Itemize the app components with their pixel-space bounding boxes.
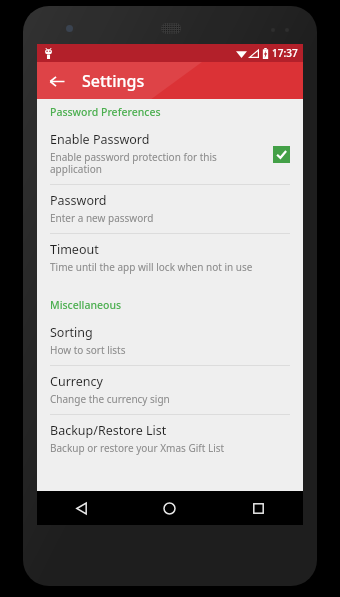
staticText: Enable Password <box>50 131 150 148</box>
staticText: Backup or restore your Xmas Gift List <box>50 441 225 455</box>
staticText: How to sort lists <box>50 343 126 357</box>
staticText: Password Preferences <box>50 105 161 119</box>
button[interactable]: Recent apps <box>214 491 303 525</box>
button[interactable]: Backup/Restore List <box>37 415 303 463</box>
staticText: Backup/Restore List <box>50 422 167 439</box>
button[interactable]: Currency <box>37 366 303 414</box>
staticText: 17:37 <box>272 46 298 60</box>
staticText: Enter a new password <box>50 211 154 225</box>
staticText: Time until the app will lock when not in… <box>50 260 253 274</box>
button[interactable]: Back <box>37 491 125 525</box>
staticText: Settings <box>82 70 145 92</box>
button[interactable]: Sorting <box>37 317 303 365</box>
button[interactable]: Password <box>37 185 303 233</box>
staticText: Timeout <box>50 241 99 258</box>
staticText: Miscellaneous <box>50 298 122 312</box>
button[interactable]: Back <box>41 65 73 97</box>
button[interactable]: Enable Password <box>270 143 292 165</box>
button[interactable]: Home <box>125 491 214 525</box>
button[interactable]: Timeout <box>37 234 303 282</box>
staticText: Change the currency sign <box>50 392 170 406</box>
staticText: Enable password protection for this appl… <box>50 150 262 176</box>
staticText: Currency <box>50 373 103 390</box>
staticText: Password <box>50 192 107 209</box>
staticText: Sorting <box>50 324 93 341</box>
button[interactable]: Enable Password <box>37 124 303 184</box>
